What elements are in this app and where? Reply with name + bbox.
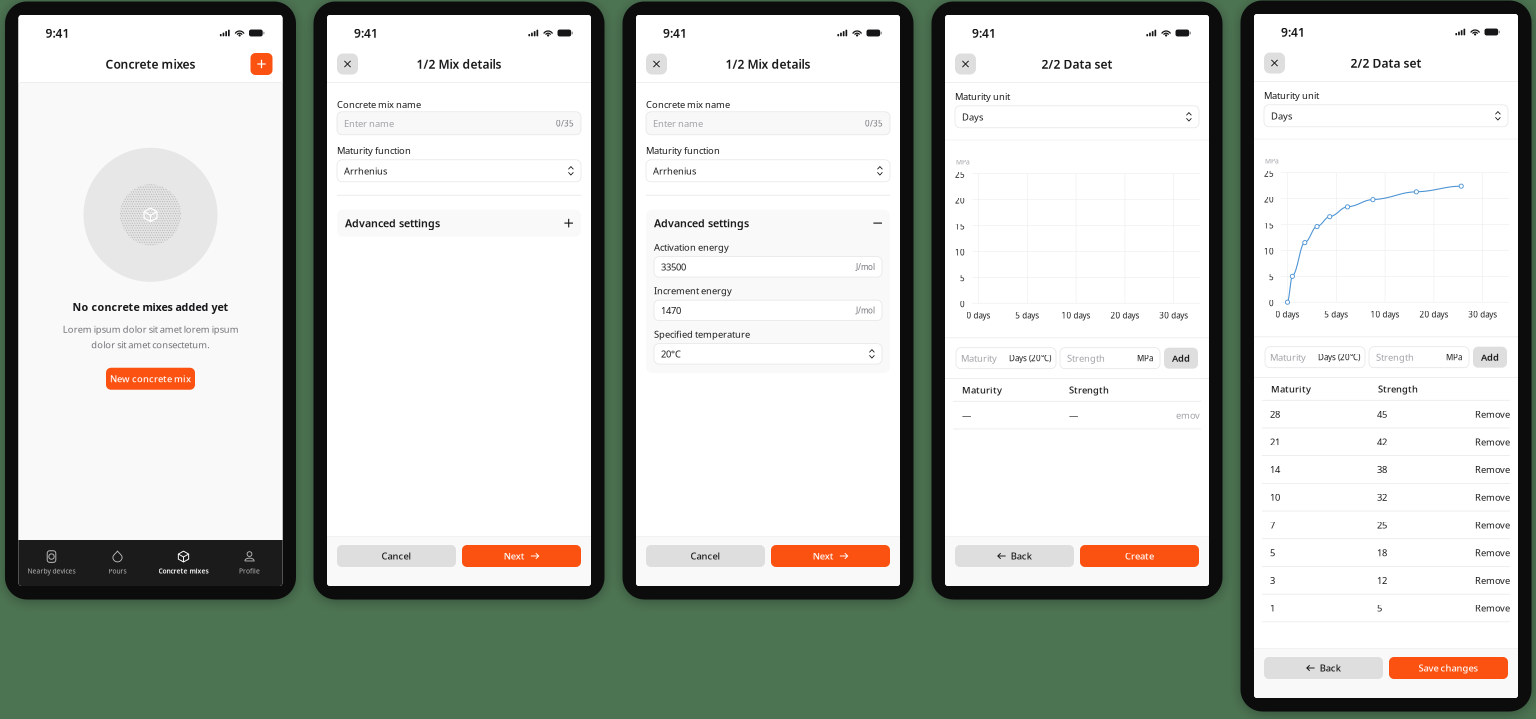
staticText: 32 <box>1377 491 1387 503</box>
staticText: Days <box>1271 110 1292 122</box>
staticText: 2/2 Data set <box>1350 55 1421 71</box>
staticText: MPa <box>956 157 970 166</box>
staticText: J/mol <box>856 261 875 272</box>
staticText: 25 <box>1264 168 1274 179</box>
staticText: 1 <box>1270 602 1275 614</box>
button[interactable]: emov <box>1176 409 1200 421</box>
staticText: Add <box>1172 352 1190 364</box>
staticText: 18 <box>1377 546 1387 559</box>
staticText: Save changes <box>1418 662 1478 674</box>
button[interactable]: 20°C <box>654 344 882 364</box>
staticText: Maturity unit <box>1264 89 1319 101</box>
button[interactable]: Remove <box>1475 408 1510 420</box>
staticText: 45 <box>1377 408 1387 420</box>
button[interactable]: Remove <box>1475 519 1510 531</box>
staticText: 9:41 <box>663 25 687 41</box>
button[interactable]: Pours <box>84 541 150 585</box>
staticText: Advanced settings <box>654 216 749 230</box>
staticText: Next <box>813 550 834 562</box>
staticText: Back <box>1320 662 1341 674</box>
staticText: Maturity function <box>337 144 411 156</box>
staticText: 5 <box>1377 602 1382 614</box>
staticText: Maturity unit <box>955 90 1010 102</box>
button[interactable]: Concrete mixes <box>150 541 216 585</box>
staticText: Strength <box>1378 383 1418 395</box>
staticText: 3 <box>1270 574 1275 586</box>
staticText: 0 <box>1269 298 1274 308</box>
button[interactable]: Create <box>1080 545 1199 567</box>
staticText: 1470 <box>661 304 681 317</box>
button[interactable]: Back <box>1264 657 1383 679</box>
staticText: 20 days <box>1110 310 1139 321</box>
staticText: Enter name <box>344 117 394 129</box>
button[interactable]: Next <box>771 545 890 567</box>
button[interactable]: Cancel <box>646 545 765 567</box>
staticText: 10 days <box>1062 310 1091 321</box>
button[interactable]: Add <box>1473 347 1507 368</box>
staticText: Days (20°C) <box>1318 352 1360 362</box>
staticText: Activation energy <box>654 241 729 253</box>
staticText: Strength <box>1376 351 1414 363</box>
staticText: Concrete mixes <box>105 56 195 72</box>
staticText: Strength <box>1067 352 1105 364</box>
button[interactable]: Save changes <box>1389 657 1508 679</box>
button[interactable]: Back <box>955 545 1074 567</box>
staticText: 5 <box>1269 272 1274 282</box>
button[interactable]: Next <box>462 545 581 567</box>
button[interactable]: Advanced settings <box>646 210 890 237</box>
staticText: 30 days <box>1159 310 1188 321</box>
button[interactable]: Profile <box>216 541 282 585</box>
staticText: MPa <box>1265 156 1279 165</box>
button[interactable]: Close <box>1264 52 1285 73</box>
staticText: 33500 <box>661 261 686 273</box>
staticText: 5 <box>960 273 965 283</box>
button[interactable]: Close <box>646 53 667 74</box>
button[interactable]: Add concrete mix <box>250 53 272 75</box>
button[interactable]: Nearby devices <box>18 541 84 585</box>
staticText: emov <box>1176 409 1200 421</box>
staticText: Remove <box>1475 436 1510 448</box>
staticText: 7 <box>1270 519 1275 531</box>
button[interactable]: Arrhenius <box>646 160 890 182</box>
button[interactable]: Arrhenius <box>337 160 581 182</box>
staticText: 9:41 <box>972 25 996 41</box>
button[interactable]: Remove <box>1475 436 1510 448</box>
staticText: 20 <box>955 195 965 206</box>
staticText: 10 days <box>1371 309 1400 320</box>
staticText: 5 days <box>1015 310 1039 321</box>
staticText: — <box>1069 409 1078 421</box>
staticText: No concrete mixes added yet <box>72 300 228 314</box>
button[interactable]: Remove <box>1475 602 1510 614</box>
button[interactable]: Close <box>337 53 358 74</box>
button[interactable]: New concrete mix <box>106 368 195 390</box>
staticText: Nearby devices <box>27 567 75 575</box>
staticText: Remove <box>1475 602 1510 614</box>
staticText: Add <box>1481 351 1499 363</box>
staticText: 9:41 <box>1281 24 1305 40</box>
button[interactable]: Add <box>1164 348 1198 369</box>
staticText: Maturity <box>1270 351 1306 363</box>
button[interactable]: Days <box>955 106 1199 128</box>
staticText: 20 days <box>1419 309 1448 320</box>
button[interactable]: Remove <box>1475 491 1510 503</box>
staticText: Remove <box>1475 519 1510 531</box>
staticText: Cancel <box>690 550 720 562</box>
staticText: 10 <box>1270 491 1280 503</box>
button[interactable]: Days <box>1264 105 1508 127</box>
button[interactable]: Close <box>955 53 976 74</box>
staticText: 5 days <box>1324 309 1348 320</box>
staticText: Increment energy <box>654 284 732 297</box>
staticText: MPa <box>1137 353 1153 363</box>
button[interactable]: Remove <box>1475 546 1510 559</box>
button[interactable]: Cancel <box>337 545 456 567</box>
staticText: Lorem ipsum dolor sit amet lorem ipsum d… <box>62 323 238 351</box>
button[interactable]: Remove <box>1475 463 1510 476</box>
staticText: Maturity <box>1271 383 1311 395</box>
staticText: 10 <box>1264 246 1274 257</box>
staticText: Days <box>962 111 983 123</box>
button[interactable]: Advanced settings <box>337 210 581 237</box>
staticText: 20 <box>1264 194 1274 205</box>
button[interactable]: Remove <box>1475 574 1510 586</box>
staticText: 30 days <box>1468 309 1497 320</box>
staticText: 2/2 Data set <box>1041 56 1112 72</box>
